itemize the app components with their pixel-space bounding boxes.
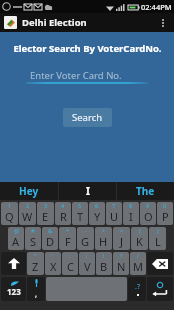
button[interactable]: # — [25, 227, 41, 250]
button[interactable]: 6 — [89, 202, 105, 225]
button[interactable]: ) — [149, 227, 166, 250]
staticText: " — [34, 252, 37, 259]
button[interactable]: The — [117, 182, 174, 200]
button[interactable]: Numbers — [1, 277, 26, 301]
button[interactable]: I — [59, 182, 116, 200]
staticText: & — [48, 227, 53, 234]
staticText: L — [155, 234, 161, 249]
staticText: - — [85, 227, 87, 234]
staticText: # — [31, 227, 35, 234]
staticText: G — [81, 234, 90, 249]
button[interactable]: 3 — [37, 202, 54, 225]
staticText: ( — [139, 227, 141, 234]
staticText: 123 — [7, 286, 21, 297]
staticText: : — [69, 252, 71, 259]
staticText: H — [99, 234, 108, 249]
staticText: Z — [32, 259, 39, 274]
button[interactable]: - — [77, 227, 94, 250]
staticText: W — [22, 209, 33, 224]
button[interactable]: Period — [128, 277, 146, 301]
staticText: 6 — [95, 202, 99, 209]
button[interactable]: Shift — [1, 252, 26, 275]
staticText: = — [120, 227, 124, 234]
staticText: ) — [157, 227, 159, 234]
staticText: Hey — [19, 184, 39, 198]
staticText: * — [66, 227, 70, 234]
staticText: A — [12, 234, 20, 249]
staticText: T — [77, 209, 84, 224]
button[interactable]: 1 — [1, 202, 18, 225]
staticText: S — [30, 234, 37, 249]
staticText: Y — [94, 209, 101, 224]
staticText: The — [136, 184, 155, 198]
staticText: Enter Voter Card No. — [30, 69, 122, 82]
staticText: P — [162, 209, 169, 224]
button[interactable]: : — [62, 252, 78, 275]
staticText: 4 — [61, 202, 65, 209]
staticText: M — [133, 259, 143, 274]
button[interactable]: 8 — [123, 202, 139, 225]
staticText: @ — [14, 227, 19, 234]
staticText: N — [117, 259, 126, 274]
button[interactable]: More options — [156, 13, 170, 32]
staticText: 7 — [112, 202, 116, 209]
staticText: 5 — [78, 202, 82, 209]
staticText: F — [65, 234, 71, 249]
button[interactable]: 2 — [19, 202, 36, 225]
button[interactable]: ? — [113, 252, 129, 275]
staticText: , — [35, 288, 38, 299]
staticText: ; — [86, 252, 88, 259]
staticText: ' — [52, 252, 54, 259]
button[interactable]: + — [95, 227, 112, 250]
button[interactable]: Delete — [147, 252, 173, 275]
staticText: X — [50, 259, 57, 274]
button[interactable]: 9 — [140, 202, 156, 225]
staticText: Q — [5, 209, 14, 224]
button[interactable]: 5 — [72, 202, 88, 225]
button[interactable]: ( — [131, 227, 148, 250]
button[interactable]: 0 — [157, 202, 173, 225]
staticText: 9 — [146, 202, 150, 209]
staticText: V — [84, 259, 91, 274]
staticText: R — [60, 209, 67, 224]
button[interactable]: * — [59, 227, 76, 250]
button[interactable]: Enter — [147, 277, 173, 301]
button[interactable]: " — [27, 252, 44, 275]
button[interactable]: ' — [45, 252, 61, 275]
staticText: U — [110, 209, 119, 224]
button[interactable]: 4 — [55, 202, 71, 225]
staticText: / — [137, 252, 140, 259]
staticText: O — [144, 209, 153, 224]
staticText: 8 — [129, 202, 133, 209]
button[interactable]: 7 — [106, 202, 122, 225]
staticText: B — [100, 259, 108, 274]
button[interactable]: Enter Voter Card No. — [26, 66, 148, 84]
staticText: I — [129, 209, 133, 224]
button[interactable]: Hey — [0, 182, 58, 200]
staticText: D — [46, 234, 55, 249]
staticText: 1 — [8, 202, 12, 209]
staticText: 3 — [44, 202, 48, 209]
staticText: 02:44PM — [141, 2, 172, 12]
button[interactable]: Voice input — [27, 277, 45, 301]
staticText: Delhi Election — [22, 16, 87, 29]
staticText: I — [86, 184, 90, 198]
staticText: .? — [135, 282, 140, 292]
button[interactable]: = — [113, 227, 130, 250]
button[interactable]: / — [130, 252, 146, 275]
staticText: J — [120, 234, 124, 249]
staticText: 2 — [26, 202, 30, 209]
staticText: Search — [72, 111, 103, 124]
button[interactable]: ! — [96, 252, 112, 275]
button[interactable]: ; — [79, 252, 95, 275]
staticText: C — [67, 259, 74, 274]
staticText: ! — [103, 252, 105, 259]
staticText: E — [42, 209, 49, 224]
staticText: + — [102, 227, 106, 234]
staticText: Elector Search By VoterCardNo. — [13, 42, 162, 55]
button[interactable]: Search — [63, 108, 112, 127]
button[interactable]: @ — [8, 227, 24, 250]
staticText: 0 — [163, 202, 167, 209]
button[interactable]: & — [42, 227, 58, 250]
